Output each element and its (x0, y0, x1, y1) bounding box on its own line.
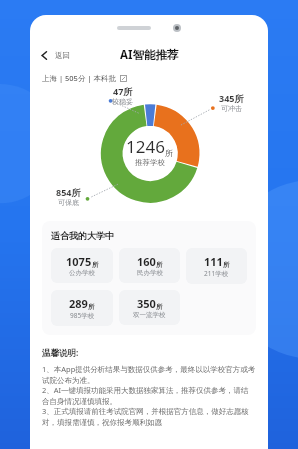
button[interactable]: 返回 (36, 47, 74, 64)
staticText: 较稳妥 (112, 97, 133, 106)
staticText: 所 (223, 261, 230, 269)
other: Edit filters (120, 75, 127, 82)
button[interactable]: 350 (119, 290, 180, 325)
staticText: AI智能推荐 (120, 47, 179, 63)
staticText: 推荐学校 (135, 158, 165, 167)
button[interactable]: 289 (51, 290, 113, 326)
staticText: 民办学校 (137, 269, 163, 277)
staticText: 温馨说明: (42, 347, 79, 359)
staticText: 返回 (55, 51, 70, 60)
staticText: 所 (92, 261, 99, 269)
staticText: 985学校 (70, 311, 95, 320)
staticText: 双一流学校 (133, 311, 166, 319)
staticText: 上海 | 505分 | 本科批 (42, 73, 116, 83)
staticText: 可冲击 (221, 104, 242, 113)
staticText: 可保底 (58, 198, 79, 207)
staticText: 3、正式填报请前往考试院官网，并根据官方信息，做好志愿核对，填报需谨慎，祝你报考… (42, 406, 256, 427)
staticText: 350 (137, 296, 156, 311)
button[interactable]: 111 (186, 248, 247, 284)
staticText: 1、本App提供分析结果与数据仅供参考，最终以以学校官方或考试院公布为准。 (42, 364, 256, 385)
staticText: 211学校 (204, 269, 229, 278)
staticText: 1075 (66, 254, 92, 269)
staticText: 111 (204, 254, 223, 269)
staticText: 公办学校 (69, 269, 95, 277)
staticText: 289 (69, 296, 88, 311)
staticText: 1246 (126, 135, 165, 158)
staticText: 适合我的大学中 (51, 230, 114, 241)
staticText: 160 (137, 254, 156, 269)
staticText: 所 (156, 261, 163, 269)
button[interactable]: 1075 (51, 248, 113, 283)
staticText: 345所 (219, 92, 244, 104)
staticText: 854所 (56, 186, 81, 198)
staticText: 47所 (113, 85, 133, 97)
staticText: 2、AI一键填报功能采用大数据独家算法，推荐仅供参考，请结合自身情况谨慎填报。 (42, 385, 256, 406)
staticText: 所 (165, 148, 173, 158)
staticText: 所 (156, 303, 163, 311)
button[interactable]: 160 (119, 248, 180, 283)
staticText: 所 (88, 303, 95, 311)
button[interactable]: 上海 | 505分 | 本科批 (40, 71, 129, 85)
